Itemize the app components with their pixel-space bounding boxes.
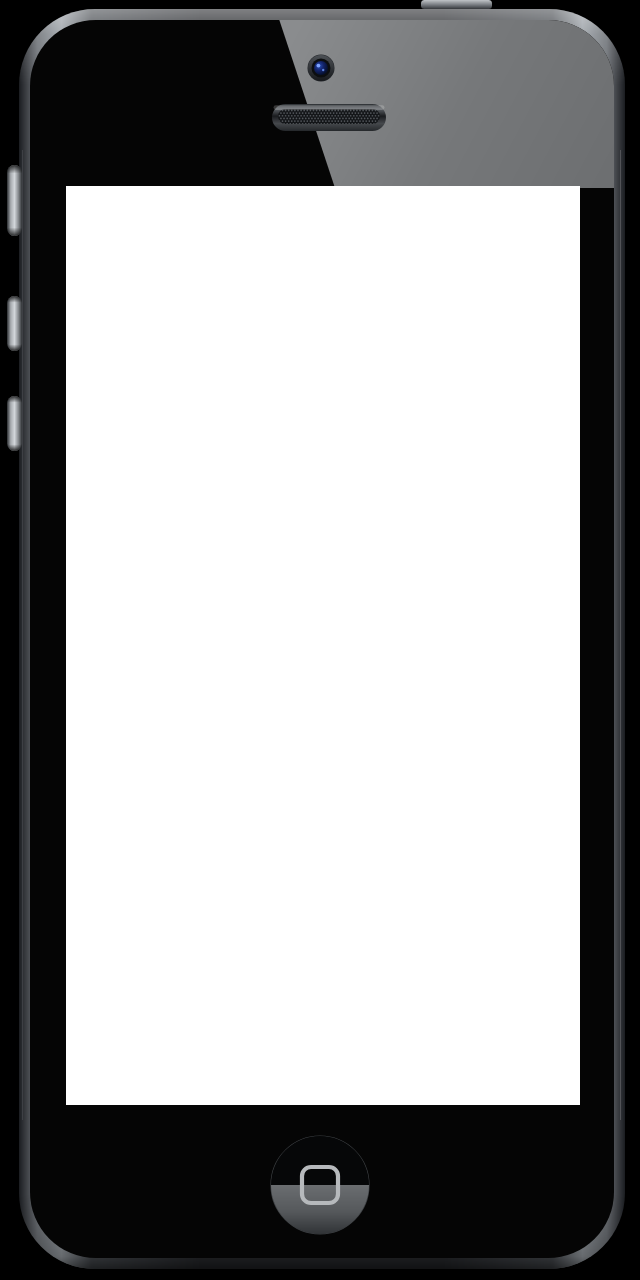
- button[interactable]: iPhone device illustration: [0, 0, 640, 1280]
